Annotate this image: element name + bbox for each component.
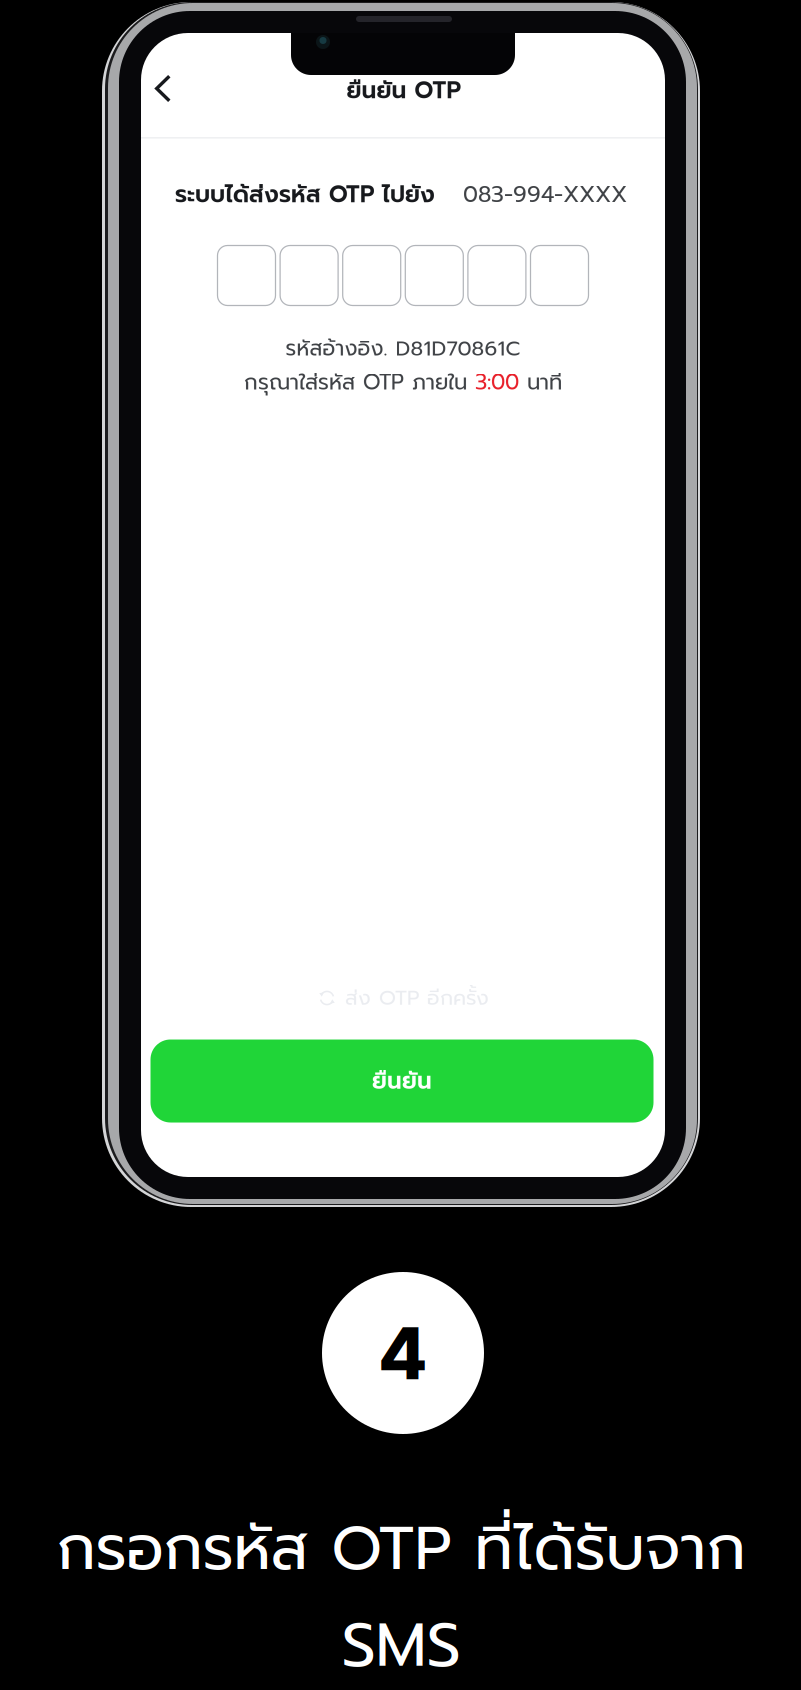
staticText: ระบบได้ส่งรหัส OTP ไปยัง [175,177,435,212]
button[interactable]: Back [140,65,186,111]
staticText: SMS [341,1599,460,1690]
staticText: รหัสอ้างอิง. D81D70861C [285,333,520,364]
staticText: กรอกรหัส OTP ที่ได้รับจาก [56,1502,745,1595]
staticText: 4 [378,1309,428,1396]
button[interactable]: ยืนยัน [150,1039,653,1122]
button[interactable]: ส่ง OTP อีกครั้ง [307,974,499,1021]
staticText: นาที [519,366,562,399]
staticText: ยืนยัน [372,1064,432,1098]
staticText: 083-994-XXXX [463,178,627,211]
staticText: กรุณาใส่รหัส OTP ภายใน [244,366,475,399]
staticText: ส่ง OTP อีกครั้ง [345,982,489,1013]
staticText: 3:00 [475,366,519,399]
staticText: ยืนยัน OTP [346,73,461,108]
